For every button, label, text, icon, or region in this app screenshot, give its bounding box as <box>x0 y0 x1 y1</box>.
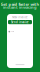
button[interactable]: Send invoice <box>8 20 32 24</box>
staticText: instant invoicing <box>3 5 37 10</box>
staticText: Send invoice <box>11 20 29 24</box>
staticText: Get paid faster with <box>0 1 39 7</box>
staticText: Paid <box>11 31 14 32</box>
staticText: New invoice <box>12 15 28 19</box>
